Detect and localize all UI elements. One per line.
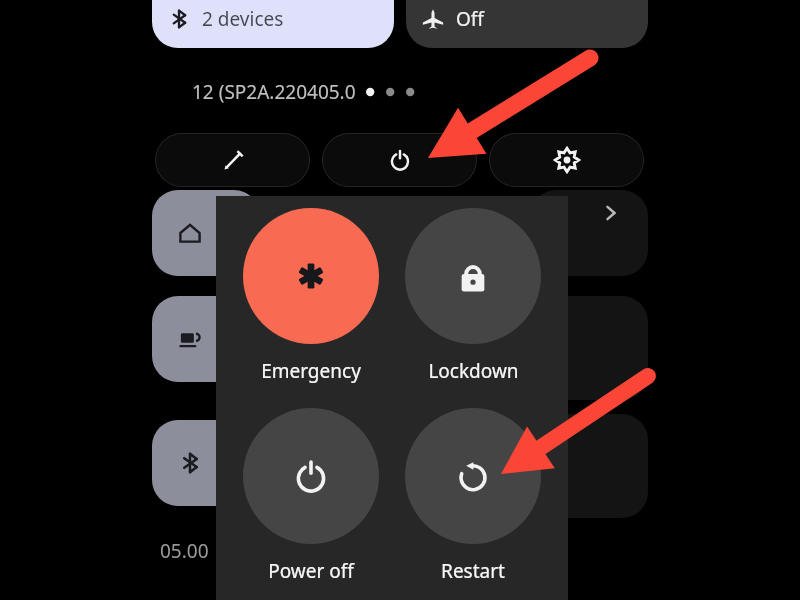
staticText: Off <box>456 6 484 32</box>
button[interactable]: Emergency <box>243 196 379 384</box>
button[interactable]: Power <box>322 133 477 187</box>
button[interactable] <box>152 190 260 276</box>
staticText: 05.00 <box>160 538 209 564</box>
button[interactable]: Settings <box>489 133 644 187</box>
button[interactable]: Power off <box>243 396 379 584</box>
button[interactable]: 2 devices <box>152 0 394 48</box>
staticText: Restart <box>441 558 505 584</box>
button[interactable] <box>152 420 260 506</box>
button[interactable]: ode <box>530 414 648 518</box>
button[interactable]: Restart <box>405 396 541 584</box>
staticText: 2 devices <box>202 6 284 32</box>
staticText: 12 (SP2A.220405.0 <box>192 79 356 105</box>
staticText: ode <box>532 454 566 480</box>
staticText: Power off <box>268 558 354 584</box>
button[interactable] <box>530 296 648 400</box>
button[interactable] <box>152 296 260 382</box>
button[interactable]: Expand <box>530 190 648 276</box>
other: Expand <box>600 202 622 224</box>
staticText: Lockdown <box>428 358 519 384</box>
staticText: Emergency <box>261 358 361 384</box>
button[interactable]: Lockdown <box>405 196 541 384</box>
button[interactable]: Edit <box>155 133 310 187</box>
button[interactable]: Off <box>406 0 648 48</box>
